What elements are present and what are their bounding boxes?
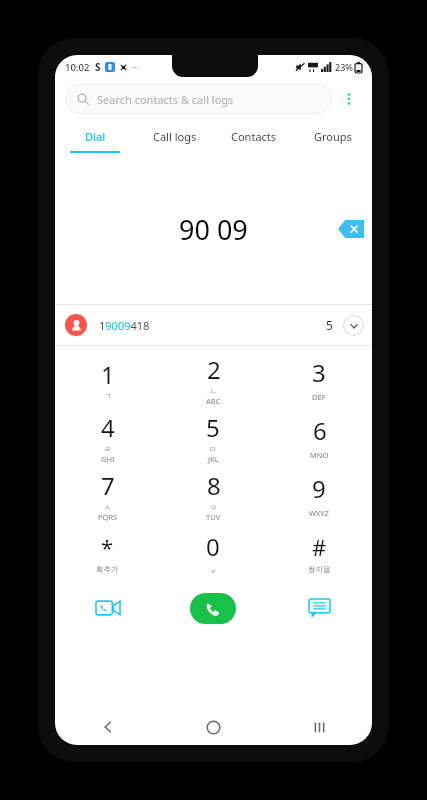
button[interactable]: Call bbox=[190, 593, 236, 624]
button[interactable]: 5 bbox=[160, 408, 266, 466]
staticText: 6 bbox=[313, 414, 327, 447]
staticText: # bbox=[312, 532, 327, 562]
staticText: * bbox=[101, 532, 114, 562]
button[interactable]: Back bbox=[55, 709, 160, 745]
staticText: + bbox=[211, 566, 216, 576]
staticText: 90 09 bbox=[179, 211, 248, 248]
staticText: S bbox=[95, 60, 101, 74]
button[interactable]: 8 bbox=[160, 466, 266, 524]
staticText: DEF bbox=[312, 392, 326, 402]
button[interactable]: Message bbox=[266, 582, 372, 634]
button[interactable]: 2 bbox=[160, 350, 266, 408]
staticText: 쌍자음 bbox=[308, 565, 331, 574]
button[interactable]: Video call bbox=[55, 582, 160, 634]
button[interactable]: 3 bbox=[266, 350, 372, 408]
staticText: ··· bbox=[132, 62, 139, 73]
staticText: MNO bbox=[310, 450, 329, 460]
staticText: ㄱ bbox=[104, 392, 112, 401]
staticText: TUV bbox=[206, 512, 221, 522]
button[interactable]: Backspace bbox=[338, 220, 364, 238]
button[interactable]: 6 bbox=[266, 408, 372, 466]
staticText: ㅇ bbox=[210, 503, 218, 512]
button[interactable]: Dial bbox=[55, 119, 135, 153]
staticText: 7 bbox=[101, 469, 115, 502]
staticText: 획추가 bbox=[96, 565, 119, 574]
staticText: Groups bbox=[314, 129, 352, 144]
staticText: PQRS bbox=[98, 512, 118, 522]
button[interactable]: Search contacts & call logs bbox=[65, 84, 332, 114]
staticText: 4 bbox=[101, 411, 115, 444]
button[interactable]: Expand bbox=[343, 315, 364, 336]
button[interactable]: 1 bbox=[55, 350, 160, 408]
staticText: 1 bbox=[101, 358, 115, 391]
staticText: WXYZ bbox=[309, 508, 329, 518]
staticText: 5 bbox=[206, 411, 220, 444]
staticText: 5 bbox=[326, 317, 333, 333]
staticText: JKL bbox=[208, 454, 219, 464]
button[interactable]: Call logs bbox=[135, 119, 214, 153]
button[interactable]: Home bbox=[160, 709, 266, 745]
button[interactable]: 4 bbox=[55, 408, 160, 466]
staticText: ㅅ bbox=[104, 503, 112, 512]
staticText: Call logs bbox=[153, 129, 197, 144]
staticText: 8 bbox=[207, 469, 221, 502]
staticText: Contacts bbox=[231, 129, 277, 144]
button[interactable]: Contacts bbox=[214, 119, 293, 153]
staticText: 9 bbox=[312, 472, 326, 505]
staticText: GHI bbox=[101, 454, 115, 464]
staticText: ABC bbox=[206, 396, 221, 406]
staticText: Dial bbox=[85, 129, 106, 144]
button[interactable]: 7 bbox=[55, 466, 160, 524]
staticText: 3 bbox=[312, 356, 326, 389]
button[interactable]: 9 bbox=[266, 466, 372, 524]
staticText: 10:02 bbox=[65, 61, 90, 74]
staticText: 0 bbox=[206, 530, 220, 563]
staticText: ㄹ bbox=[104, 445, 112, 454]
button[interactable]: 19009418 bbox=[55, 305, 372, 345]
staticText: ㄴ bbox=[210, 387, 218, 396]
button[interactable]: More options bbox=[332, 82, 366, 116]
staticText: 23% bbox=[335, 61, 353, 73]
staticText: 19009418 bbox=[99, 318, 150, 333]
button[interactable]: Groups bbox=[293, 119, 372, 153]
button[interactable]: # bbox=[266, 524, 372, 582]
staticText: Search contacts & call logs bbox=[97, 92, 234, 107]
button[interactable]: Recents bbox=[266, 709, 372, 745]
staticText: 2 bbox=[207, 353, 221, 386]
button[interactable]: 0 bbox=[160, 524, 266, 582]
button[interactable]: * bbox=[55, 524, 160, 582]
staticText: ㅁ bbox=[209, 445, 217, 454]
